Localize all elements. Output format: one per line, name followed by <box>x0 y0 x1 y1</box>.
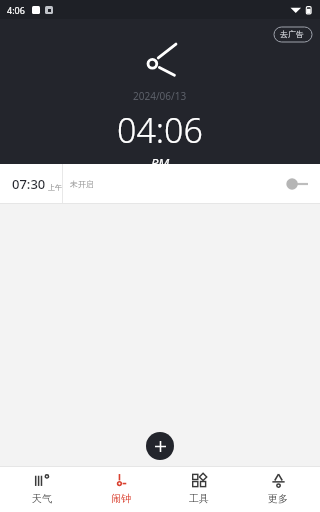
button[interactable]: Toggle alarm <box>286 176 308 192</box>
staticText: 07:30 <box>12 175 46 193</box>
button[interactable]: 天气 <box>6 466 78 512</box>
staticText: 去广告 <box>280 29 304 39</box>
staticText: 2024/06/13 <box>133 89 187 103</box>
button[interactable]: Add alarm <box>146 432 174 460</box>
staticText: 天气 <box>32 492 52 505</box>
staticText: PM <box>151 154 170 164</box>
staticText: 闹钟 <box>111 492 131 505</box>
button[interactable]: 更多 <box>242 466 314 512</box>
staticText: 04:06 <box>117 107 203 153</box>
staticText: 工具 <box>189 492 209 505</box>
button[interactable]: 07:30 <box>0 164 320 203</box>
staticText: 更多 <box>268 492 288 505</box>
button[interactable]: 工具 <box>163 466 235 512</box>
staticText: 4:06 <box>7 4 25 16</box>
staticText: 上午 <box>48 183 62 192</box>
button[interactable]: 闹钟 <box>85 466 157 512</box>
staticText: 未开启 <box>70 179 94 189</box>
button[interactable]: 去广告 <box>272 27 312 41</box>
